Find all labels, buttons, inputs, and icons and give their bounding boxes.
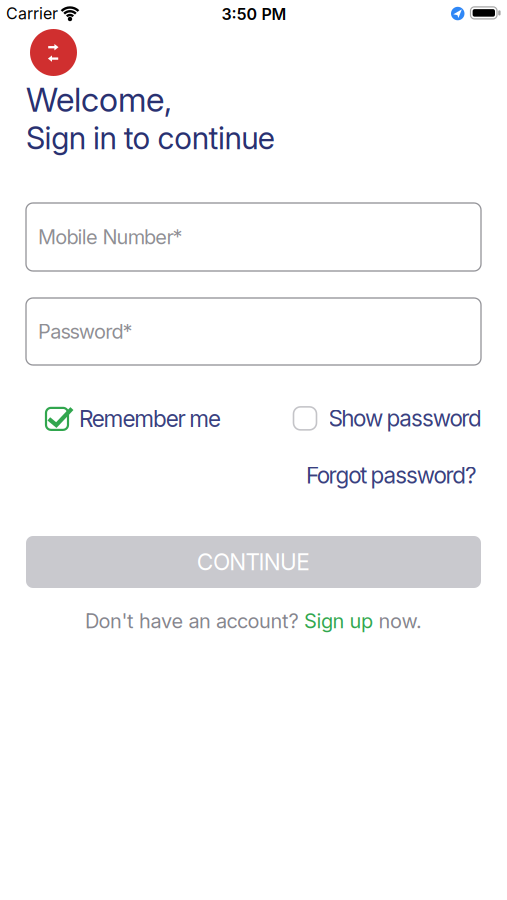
staticText: CONTINUE: [197, 549, 310, 575]
button[interactable]: Forgot password?: [306, 462, 477, 489]
staticText: Sign up: [304, 609, 373, 633]
staticText: Mobile Number*: [38, 225, 183, 249]
staticText: Password*: [38, 320, 133, 343]
textField[interactable]: Mobile Number*: [38, 225, 481, 249]
staticText: Don't have an account?: [85, 609, 304, 633]
staticText: Show password: [328, 405, 482, 432]
staticText: Welcome,: [26, 80, 172, 119]
staticText: now.: [373, 609, 422, 633]
button[interactable]: Sign up: [304, 609, 373, 633]
staticText: Carrier: [6, 4, 58, 23]
button[interactable]: CONTINUE: [26, 536, 481, 588]
staticText: Remember me: [79, 405, 221, 432]
staticText: Password*: [38, 320, 133, 343]
staticText: 3:50 PM: [221, 5, 286, 24]
staticText: Forgot password?: [306, 462, 477, 489]
staticText: Mobile Number*: [38, 225, 183, 249]
staticText: Sign in to continue: [26, 120, 275, 156]
button[interactable]: Show password: [293, 405, 482, 432]
button[interactable]: Remember me: [46, 405, 221, 432]
textField[interactable]: Password*: [38, 320, 481, 343]
